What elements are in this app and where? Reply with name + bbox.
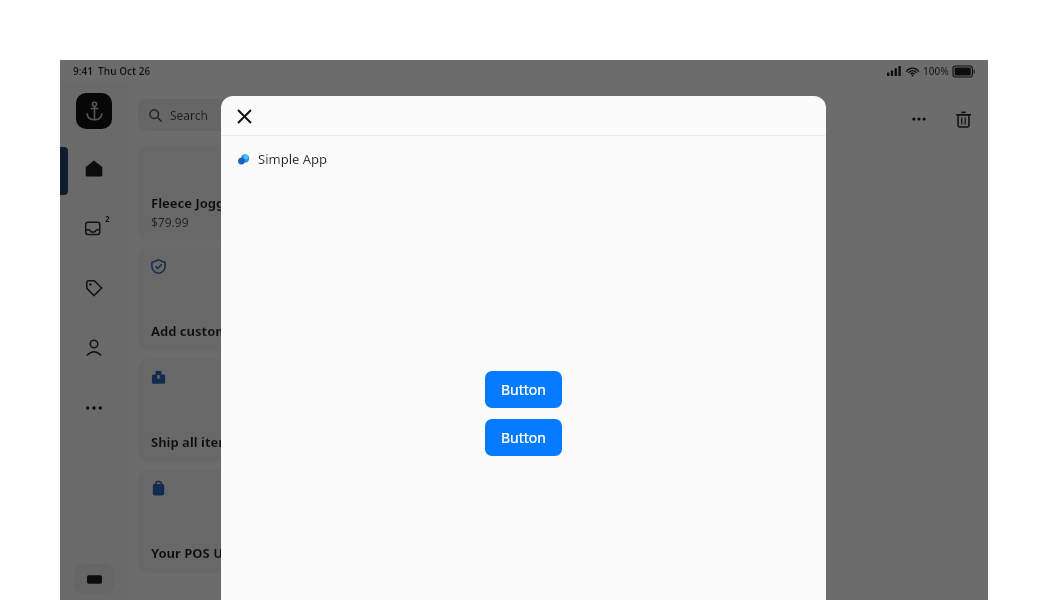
button[interactable]: Search (138, 99, 368, 131)
button[interactable]: Customers (77, 331, 111, 365)
button[interactable]: Home (77, 151, 111, 185)
button[interactable]: Orders (77, 211, 111, 245)
staticText: Button (501, 428, 546, 447)
staticText: Simple App (258, 150, 328, 168)
staticText: 100% (923, 64, 949, 78)
staticText: Button (501, 380, 546, 399)
staticText: $79.99 (151, 214, 189, 230)
button[interactable]: More (77, 391, 111, 425)
staticText: 2 (105, 213, 110, 224)
button[interactable]: Button (485, 419, 562, 456)
button[interactable]: Delete (948, 104, 978, 134)
staticText: Fleece Joggers (151, 194, 245, 212)
staticText: Your POS UI extension (151, 544, 296, 562)
button[interactable]: Fleece Joggers (138, 145, 508, 240)
button[interactable]: Terminal (74, 564, 114, 594)
button[interactable]: Simple App (221, 136, 826, 182)
staticText: Search (170, 107, 208, 123)
staticText: 9:41 Thu Oct 26 (73, 64, 151, 78)
button[interactable]: Ship all items (138, 359, 508, 462)
button[interactable]: Products (77, 271, 111, 305)
button[interactable]: Button (485, 371, 562, 408)
button[interactable]: Your POS UI extension (138, 470, 508, 573)
staticText: Add custom item (151, 322, 262, 340)
button[interactable]: More options (904, 104, 934, 134)
button[interactable]: App logo (76, 93, 112, 129)
staticText: Ship all items (151, 433, 238, 451)
button[interactable]: Close (231, 103, 257, 129)
button[interactable]: Add custom item (138, 248, 508, 351)
